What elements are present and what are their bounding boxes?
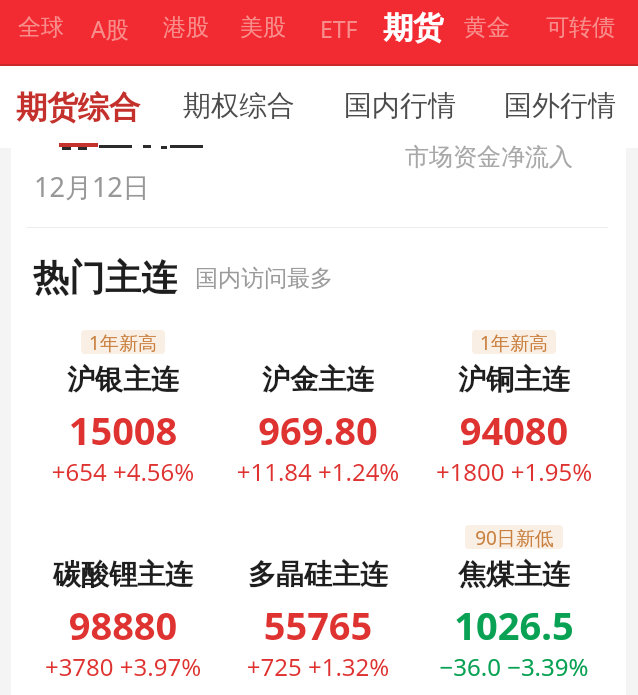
staticText: 市场资金净流入 [405, 142, 573, 172]
staticText: +3780 +3.97% [25, 650, 221, 683]
staticText: 1026.5 [416, 599, 612, 651]
staticText: 期货综合 [16, 88, 140, 127]
staticText: +725 +1.32% [220, 650, 416, 683]
staticText: 沪铜主连 [416, 362, 612, 397]
button[interactable]: 港股 [154, 9, 218, 46]
button[interactable]: 沪金主连 [220, 329, 416, 479]
button[interactable]: A股 [82, 9, 138, 48]
staticText: 98880 [25, 599, 221, 651]
button[interactable]: 美股 [231, 9, 295, 46]
staticText: 969.80 [220, 404, 416, 456]
button[interactable]: 期货 [374, 5, 452, 51]
staticText: 国内行情 [344, 88, 456, 123]
staticText: +654 +4.56% [25, 455, 221, 488]
button[interactable]: 1年新高 [25, 329, 221, 479]
staticText: 1年新高 [480, 330, 548, 354]
staticText: 12月12日 [34, 168, 150, 205]
staticText: A股 [91, 13, 129, 44]
staticText: −36.0 −3.39% [416, 650, 612, 683]
button[interactable]: 国外行情 [495, 84, 625, 127]
staticText: 焦煤主连 [416, 557, 612, 592]
staticText: 94080 [416, 404, 612, 456]
staticText: ETF [320, 13, 358, 44]
staticText: 全球 [18, 13, 64, 42]
staticText: 1年新高 [89, 330, 157, 354]
staticText: 90日新低 [475, 525, 554, 549]
staticText: +11.84 +1.24% [220, 455, 416, 488]
staticText: 热门主连 [33, 255, 177, 300]
staticText: 国外行情 [504, 88, 616, 123]
staticText: 15008 [25, 404, 221, 456]
staticText: 期权综合 [183, 88, 295, 123]
button[interactable]: 可转债 [537, 9, 624, 46]
staticText: 期货 [383, 9, 443, 47]
staticText: +1800 +1.95% [416, 455, 612, 488]
button[interactable]: 期货综合 [7, 84, 149, 131]
button[interactable]: 期权综合 [174, 84, 304, 127]
staticText: 多晶硅主连 [220, 557, 416, 592]
button[interactable]: 碳酸锂主连 [25, 524, 221, 674]
staticText: 港股 [163, 13, 209, 42]
staticText: 美股 [240, 13, 286, 42]
button[interactable]: ETF [311, 9, 367, 48]
staticText: 可转债 [546, 13, 615, 42]
staticText: 国内访问最多 [195, 264, 333, 293]
button[interactable]: 全球 [9, 9, 73, 46]
staticText: 黄金 [464, 13, 510, 42]
button[interactable]: 90日新低 [416, 524, 612, 674]
button[interactable]: 国内行情 [335, 84, 465, 127]
staticText: 沪金主连 [220, 362, 416, 397]
button[interactable]: 1年新高 [416, 329, 612, 479]
button[interactable]: 多晶硅主连 [220, 524, 416, 674]
button[interactable]: 黄金 [455, 9, 519, 46]
staticText: 55765 [220, 599, 416, 651]
staticText: 碳酸锂主连 [25, 557, 221, 592]
staticText: 沪银主连 [25, 362, 221, 397]
